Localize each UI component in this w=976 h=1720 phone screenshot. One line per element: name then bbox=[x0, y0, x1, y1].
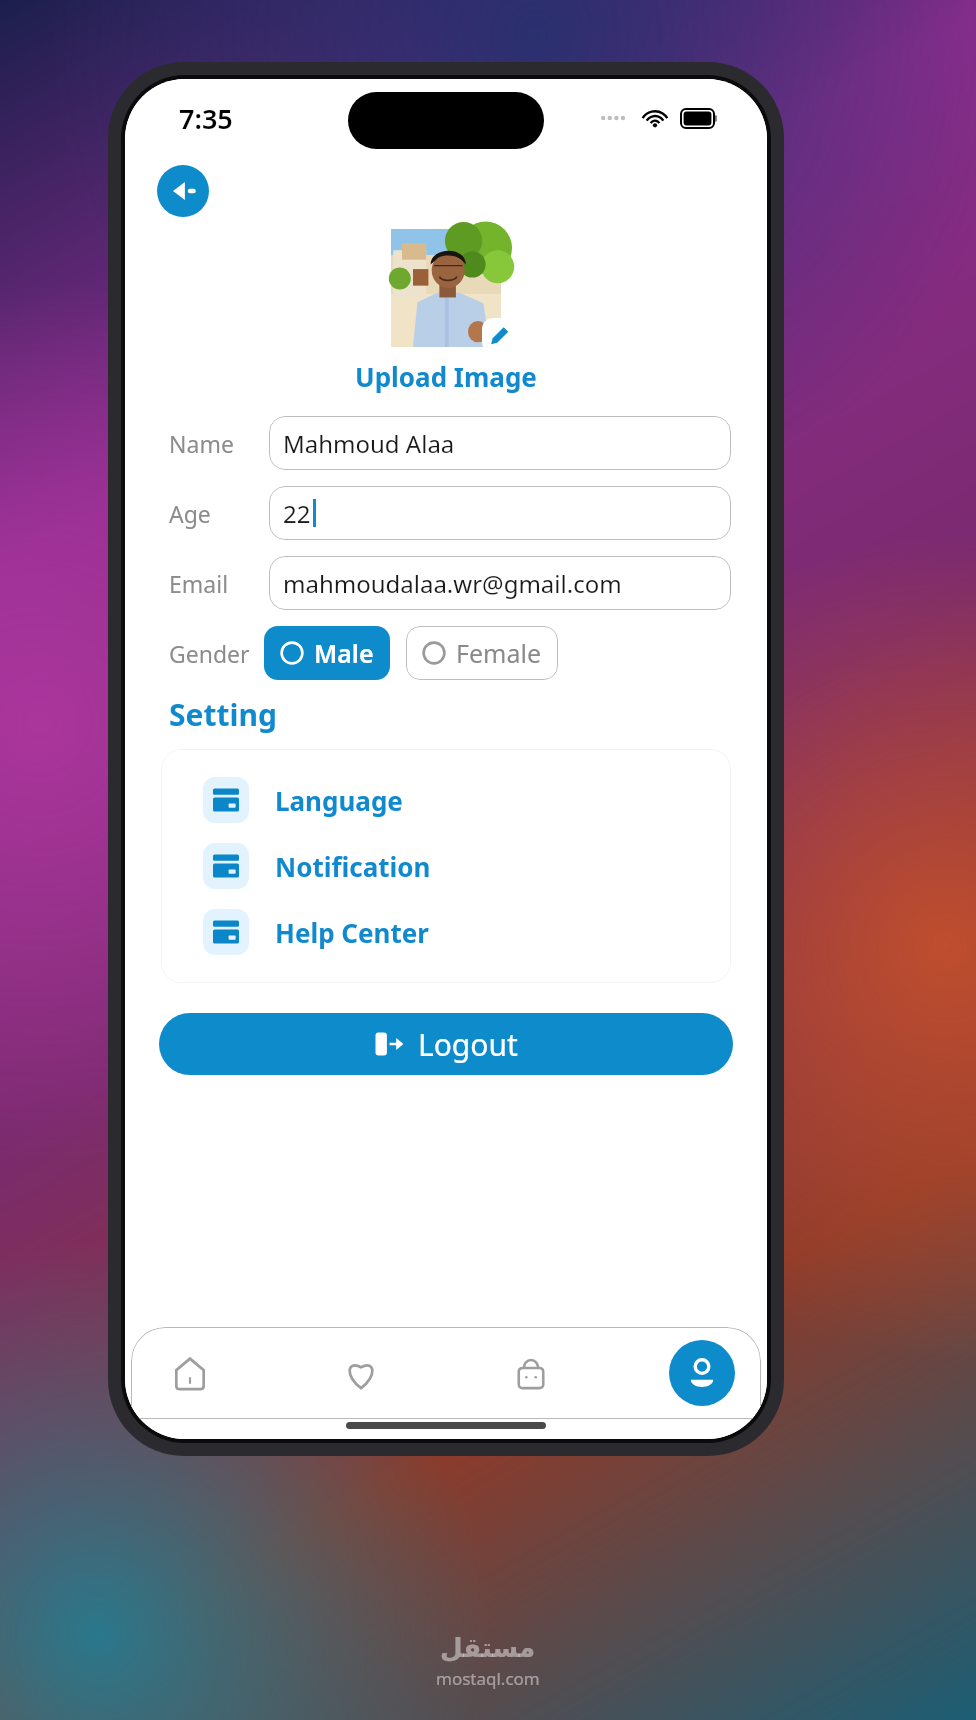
staticText: Logout bbox=[418, 1024, 518, 1065]
button[interactable]: Mahmoud Alaa bbox=[269, 416, 731, 470]
staticText: mostaql.com bbox=[436, 1667, 540, 1690]
staticText: Female bbox=[456, 636, 542, 670]
button[interactable]: Cart bbox=[498, 1340, 564, 1406]
staticText: مستقل bbox=[440, 1633, 536, 1663]
button[interactable]: Help Center bbox=[161, 899, 731, 965]
button[interactable]: Female bbox=[406, 626, 558, 680]
staticText: Setting bbox=[169, 694, 277, 735]
button[interactable]: 22 bbox=[269, 486, 731, 540]
staticText: Name bbox=[169, 428, 234, 459]
staticText: Gender bbox=[169, 638, 250, 669]
button[interactable]: Profile photo bbox=[391, 229, 501, 347]
button[interactable]: Favorites bbox=[328, 1340, 394, 1406]
staticText: 22 bbox=[283, 497, 311, 530]
staticText: Male bbox=[314, 636, 374, 670]
staticText: Help Center bbox=[275, 915, 429, 950]
button[interactable]: Back bbox=[157, 165, 209, 217]
button[interactable]: Language bbox=[161, 767, 731, 833]
button[interactable]: Edit photo bbox=[482, 318, 517, 353]
staticText: Age bbox=[169, 498, 211, 529]
staticText: Notification bbox=[275, 849, 431, 884]
button[interactable]: Upload Image bbox=[355, 359, 537, 394]
button[interactable]: Logout bbox=[159, 1013, 733, 1075]
staticText: 7:35 bbox=[179, 100, 233, 137]
staticText: Email bbox=[169, 568, 229, 599]
staticText: Language bbox=[275, 783, 403, 818]
button[interactable]: Home bbox=[157, 1340, 223, 1406]
button[interactable]: mahmoudalaa.wr@gmail.com bbox=[269, 556, 731, 610]
staticText: Mahmoud Alaa bbox=[283, 427, 455, 460]
button[interactable]: Male bbox=[264, 626, 390, 680]
button[interactable]: Profile bbox=[669, 1340, 735, 1406]
staticText: mahmoudalaa.wr@gmail.com bbox=[283, 567, 622, 600]
button[interactable]: Notification bbox=[161, 833, 731, 899]
